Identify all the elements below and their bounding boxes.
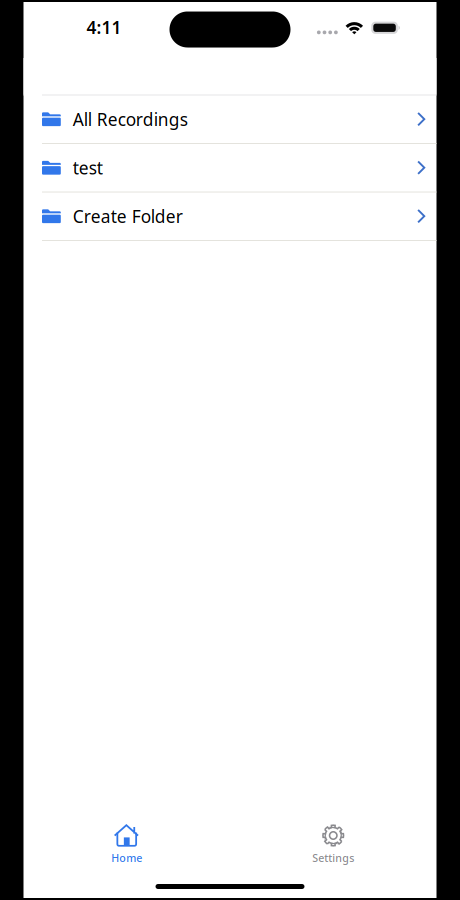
staticText: Settings [312, 851, 354, 865]
button[interactable]: Create Folder [42, 192, 426, 240]
staticText: 4:11 [86, 16, 121, 39]
button[interactable]: Settings [230, 823, 436, 872]
staticText: Home [111, 851, 142, 865]
staticText: All Recordings [73, 108, 188, 131]
staticText: Create Folder [73, 205, 183, 228]
button[interactable]: All Recordings [42, 95, 426, 143]
staticText: test [73, 156, 103, 179]
button[interactable]: Home [23, 823, 230, 872]
button[interactable]: test [42, 144, 426, 191]
